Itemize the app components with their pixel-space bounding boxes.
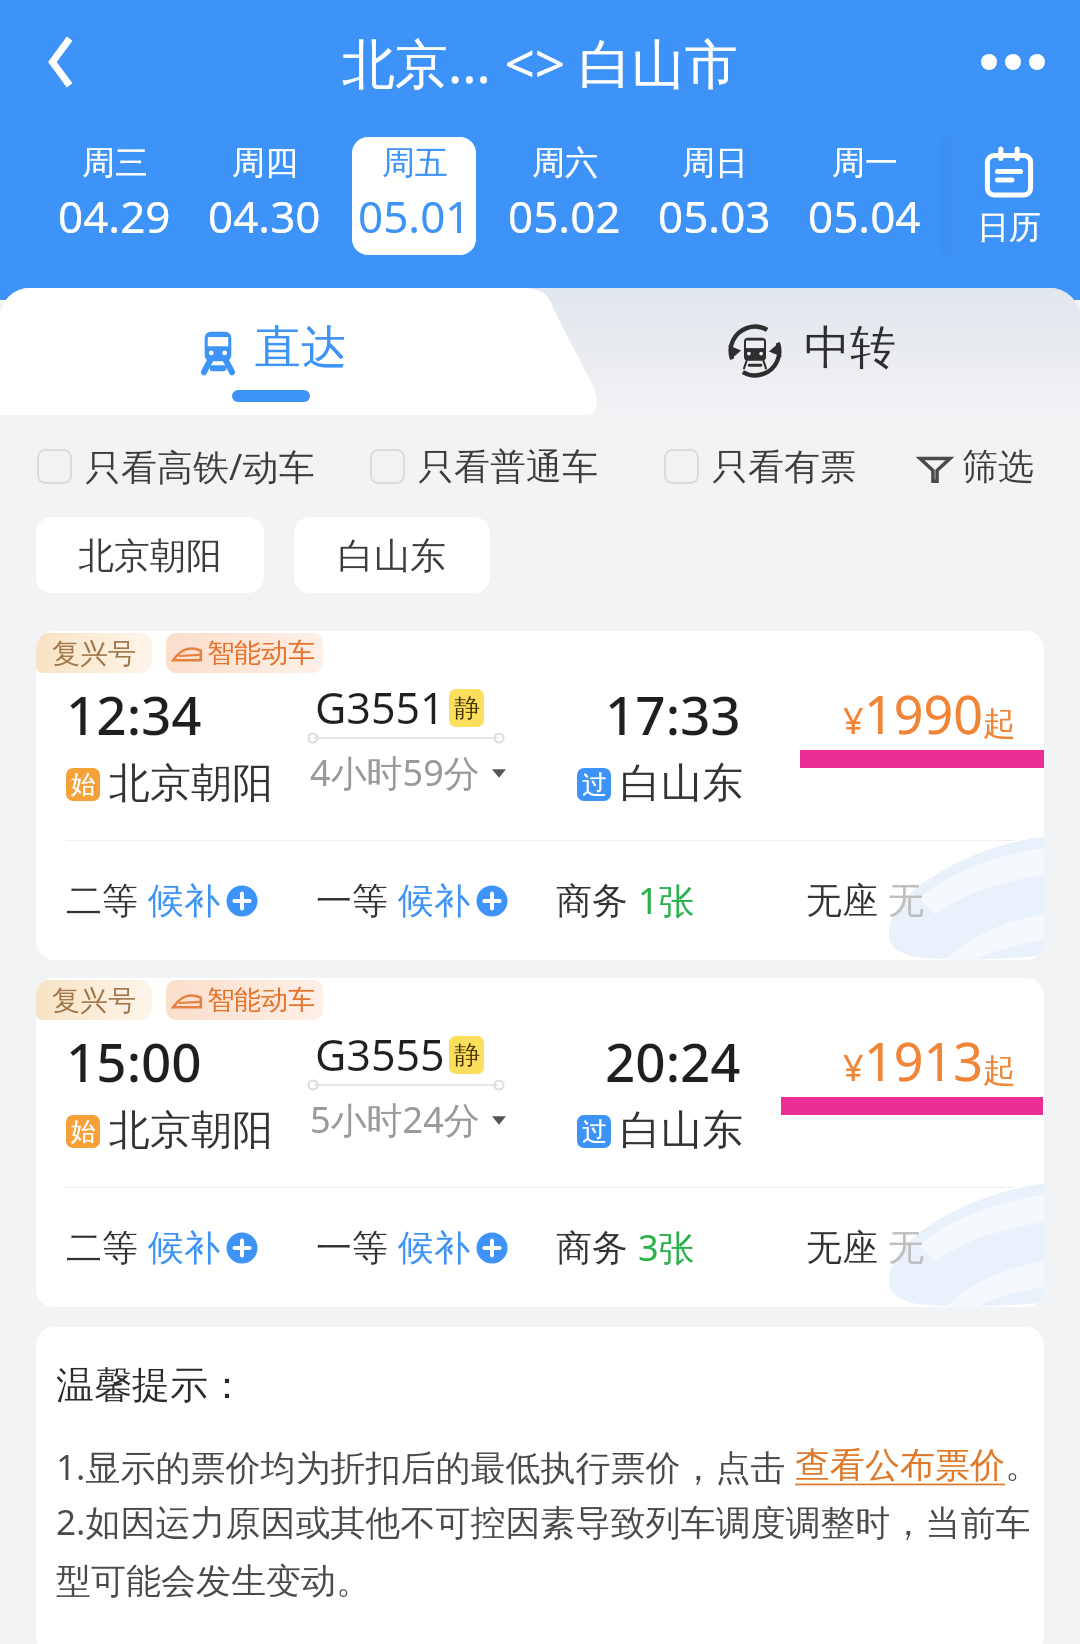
button[interactable]: 复兴号 <box>36 631 1044 960</box>
staticText: 过 <box>582 769 607 800</box>
staticText: 智能动车 <box>207 636 315 670</box>
staticText: 始 <box>71 1116 96 1147</box>
button[interactable]: 只看普通车 <box>370 444 598 489</box>
staticText: 1.显示的票价均为折扣后的最低执行票价，点击 <box>56 1443 795 1491</box>
button[interactable]: 一等 <box>316 1225 510 1270</box>
staticText: 白山东 <box>620 1105 743 1157</box>
button[interactable]: 周一 <box>802 137 926 255</box>
staticText: 05.03 <box>658 186 771 246</box>
staticText: 筛选 <box>962 444 1034 489</box>
staticText: 静 <box>454 692 480 725</box>
staticText: 复兴号 <box>52 636 136 671</box>
button[interactable]: 只看有票 <box>664 444 856 489</box>
button[interactable]: 二等 <box>66 1225 260 1270</box>
staticText: 17:33 <box>605 678 741 750</box>
staticText: 查看公布票价 <box>795 1443 1005 1487</box>
staticText: 候补 <box>148 878 220 923</box>
staticText: 周一 <box>832 142 898 184</box>
staticText: 周日 <box>682 142 748 184</box>
staticText: 无 <box>888 1225 924 1270</box>
staticText: 12:34 <box>66 678 202 750</box>
staticText: 20:24 <box>605 1025 741 1097</box>
button[interactable]: More options <box>968 17 1058 107</box>
button[interactable]: 周日 <box>652 137 776 255</box>
staticText: 15:00 <box>66 1025 202 1097</box>
staticText: 05.01 <box>358 186 471 246</box>
button[interactable]: 商务 <box>556 1223 695 1272</box>
staticText: 1张 <box>638 876 695 925</box>
button[interactable]: 筛选 <box>918 444 1034 489</box>
button[interactable]: 周六 <box>502 137 626 255</box>
staticText: G3555 <box>315 1025 445 1077</box>
staticText: 周六 <box>532 142 598 184</box>
button[interactable]: 无座 <box>806 878 924 923</box>
button[interactable]: 周三 <box>52 137 176 255</box>
button[interactable]: 周四 <box>202 137 326 255</box>
staticText: 北京朝阳 <box>109 758 273 810</box>
button[interactable]: Calendar <box>939 137 1079 255</box>
staticText: 白山东 <box>338 533 446 578</box>
staticText: 候补 <box>148 1225 220 1270</box>
button[interactable]: 中转 <box>556 288 1080 415</box>
staticText: 只看普通车 <box>418 444 598 489</box>
button[interactable]: 无座 <box>806 1225 924 1270</box>
staticText: 商务 <box>556 878 628 923</box>
staticText: 起 <box>983 1050 1016 1092</box>
staticText: 始 <box>71 769 96 800</box>
staticText: 起 <box>983 703 1016 745</box>
staticText: 二等 <box>66 1225 138 1270</box>
staticText: 04.30 <box>208 186 321 246</box>
staticText: 智能动车 <box>207 983 315 1017</box>
staticText: 北京朝阳 <box>78 533 222 578</box>
button[interactable]: Back <box>18 20 102 104</box>
staticText: 直达 <box>255 319 347 377</box>
staticText: 无 <box>888 878 924 923</box>
staticText: 周四 <box>232 142 298 184</box>
staticText: 无座 <box>806 878 878 923</box>
button[interactable]: 北京朝阳 <box>36 517 264 593</box>
button[interactable]: 商务 <box>556 876 695 925</box>
staticText: 。 <box>1005 1443 1036 1487</box>
staticText: ¥ <box>843 1043 864 1092</box>
staticText: 2.如因运力原因或其他不可控因素导致列车调度调整时，当前车型可能会发生变动。 <box>56 1498 1036 1604</box>
staticText: 日历 <box>977 207 1041 247</box>
staticText: 一等 <box>316 1225 388 1270</box>
staticText: 只看高铁/动车 <box>85 442 315 491</box>
button[interactable]: 一等 <box>316 878 510 923</box>
staticText: 3张 <box>638 1223 695 1272</box>
staticText: 04.29 <box>58 186 171 246</box>
staticText: 5小时24分 <box>310 1095 480 1144</box>
staticText: ¥ <box>843 696 864 745</box>
staticText: 温馨提示： <box>56 1361 246 1409</box>
staticText: 无座 <box>806 1225 878 1270</box>
staticText: 1990 <box>864 678 983 749</box>
button[interactable]: 复兴号 <box>36 978 1044 1307</box>
staticText: 北京朝阳 <box>109 1105 273 1157</box>
button[interactable]: 白山东 <box>294 517 490 593</box>
button[interactable]: 二等 <box>66 878 260 923</box>
staticText: 周五 <box>382 142 448 184</box>
staticText: 静 <box>454 1039 480 1072</box>
button[interactable]: 直达 <box>0 288 556 415</box>
button[interactable]: 只看高铁/动车 <box>37 442 315 491</box>
staticText: 商务 <box>556 1225 628 1270</box>
staticText: 过 <box>582 1116 607 1147</box>
staticText: 北京... <> 白山市 <box>342 26 738 98</box>
staticText: 05.04 <box>808 186 921 246</box>
staticText: 候补 <box>398 878 470 923</box>
staticText: 候补 <box>398 1225 470 1270</box>
staticText: 复兴号 <box>52 983 136 1018</box>
staticText: 一等 <box>316 878 388 923</box>
staticText: 二等 <box>66 878 138 923</box>
staticText: 4小时59分 <box>310 748 480 797</box>
staticText: 中转 <box>804 319 896 377</box>
staticText: G3551 <box>315 678 445 730</box>
button[interactable]: 周五 <box>352 137 476 255</box>
staticText: 05.02 <box>508 186 621 246</box>
staticText: 1913 <box>864 1025 983 1096</box>
staticText: 周三 <box>82 142 148 184</box>
staticText: 白山东 <box>620 758 743 810</box>
staticText: 只看有票 <box>712 444 856 489</box>
